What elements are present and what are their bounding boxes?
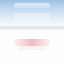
button[interactable] [14,13,50,23]
button[interactable] [14,3,50,8]
button[interactable] [14,39,50,46]
